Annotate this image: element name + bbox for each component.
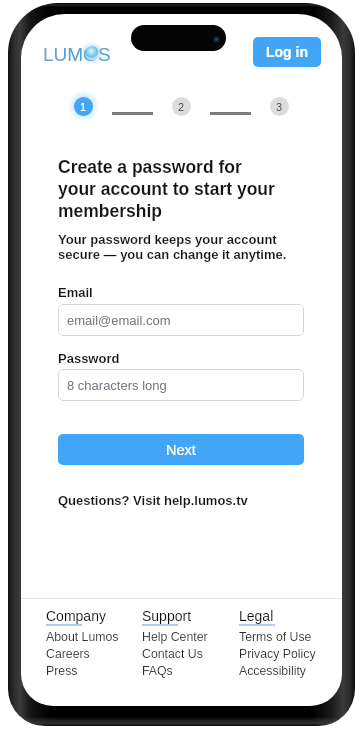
button[interactable]: Next: [58, 434, 304, 465]
staticText: 3: [276, 101, 283, 113]
button[interactable]: About Lumos: [46, 627, 119, 644]
button[interactable]: Lumos home: [43, 43, 111, 65]
button[interactable]: Help Center: [142, 627, 208, 644]
staticText: 1: [80, 101, 87, 113]
button[interactable]: email@email.com: [58, 304, 304, 336]
button[interactable]: Step 3: [270, 97, 289, 116]
button[interactable]: 8 characters long: [58, 369, 304, 401]
button[interactable]: Terms of Use: [239, 627, 312, 644]
staticText: Log in: [266, 44, 308, 60]
staticText: Support: [142, 608, 192, 624]
staticText: Password: [58, 351, 120, 366]
button[interactable]: Contact Us: [142, 644, 203, 661]
button[interactable]: Accessibility: [239, 661, 306, 678]
staticText: Company: [46, 608, 106, 624]
button[interactable]: Privacy Policy: [239, 644, 316, 661]
button[interactable]: Step 2: [172, 97, 191, 116]
staticText: 8 characters long: [67, 378, 167, 393]
staticText: Create a password for your account to st…: [58, 155, 278, 221]
button[interactable]: Careers: [46, 644, 90, 661]
staticText: LUMOS: [43, 44, 111, 65]
button[interactable]: Press: [46, 661, 78, 678]
button[interactable]: Step 1: [74, 97, 93, 116]
button[interactable]: Company: [46, 608, 106, 626]
staticText: Legal: [239, 608, 274, 624]
staticText: email@email.com: [67, 313, 171, 328]
staticText: Your password keeps your account secure …: [58, 232, 298, 262]
button[interactable]: Log in: [253, 37, 321, 67]
button[interactable]: FAQs: [142, 661, 173, 678]
button[interactable]: Support: [142, 608, 192, 626]
staticText: 2: [178, 101, 185, 113]
button[interactable]: Legal: [239, 608, 275, 626]
staticText: Next: [166, 442, 196, 458]
staticText: Email: [58, 285, 93, 300]
button[interactable]: Questions? Visit help.lumos.tv: [58, 493, 248, 508]
